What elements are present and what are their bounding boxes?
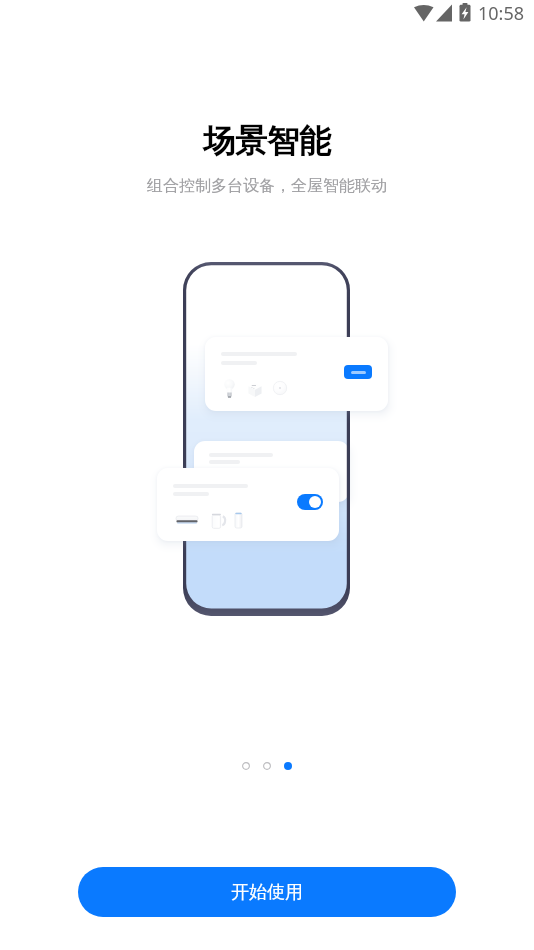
button[interactable]: Page 1: [242, 762, 250, 770]
button[interactable]: 开始使用: [78, 867, 456, 917]
staticText: 开始使用: [231, 881, 303, 904]
button[interactable]: Page 2: [263, 762, 271, 770]
button[interactable]: Execute scene: [344, 365, 372, 379]
staticText: 组合控制多台设备，全屋智能联动: [147, 176, 387, 196]
button[interactable]: Page 3, current: [284, 762, 292, 770]
button[interactable]: Toggle scene: [297, 494, 323, 510]
staticText: 场景智能: [203, 121, 331, 161]
staticText: 10:58: [478, 1, 525, 26]
